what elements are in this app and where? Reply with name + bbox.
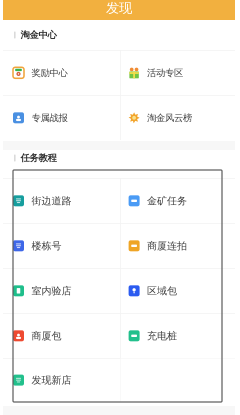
button[interactable]: 发现新店 — [3, 359, 120, 402]
staticText: 淘金风云榜 — [147, 112, 192, 124]
staticText: 活动专区 — [147, 67, 183, 79]
staticText: 区域包 — [147, 284, 177, 297]
staticText: 充电桩 — [147, 329, 177, 342]
staticText: 商厦包 — [31, 329, 61, 342]
staticText: 金矿任务 — [147, 194, 187, 207]
staticText: 街边道路 — [31, 194, 71, 207]
button[interactable]: 淘金风云榜 — [121, 96, 235, 140]
staticText: 淘金中心 — [21, 29, 57, 41]
button[interactable]: 商厦包 — [3, 314, 120, 358]
staticText: 奖励中心 — [31, 67, 67, 79]
staticText: 发现新店 — [31, 374, 71, 386]
staticText: 室内验店 — [31, 284, 71, 297]
button[interactable]: 发现 — [3, 0, 235, 20]
button[interactable]: 金矿任务 — [121, 179, 235, 223]
staticText: 任务教程 — [21, 152, 57, 164]
button[interactable]: 充电桩 — [121, 314, 235, 358]
button[interactable]: 室内验店 — [3, 269, 120, 313]
staticText: 商厦连拍 — [147, 239, 187, 252]
button[interactable]: 商厦连拍 — [121, 224, 235, 268]
button[interactable]: 专属战报 — [3, 96, 120, 140]
button[interactable]: 楼栋号 — [3, 224, 120, 268]
button[interactable]: 区域包 — [121, 269, 235, 313]
button[interactable]: 街边道路 — [3, 179, 120, 223]
staticText: 发现 — [106, 0, 132, 16]
staticText: 楼栋号 — [31, 239, 61, 252]
button[interactable]: 活动专区 — [121, 51, 235, 95]
staticText: 专属战报 — [31, 112, 67, 124]
button[interactable]: 奖励中心 — [3, 51, 120, 95]
